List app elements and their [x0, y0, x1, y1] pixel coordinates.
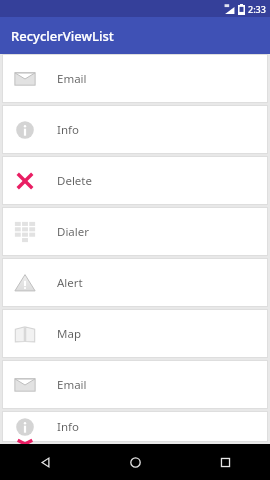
staticText: Delete — [57, 173, 92, 189]
staticText: Email — [57, 377, 87, 393]
button[interactable]: Info — [2, 411, 268, 442]
button[interactable]: Delete — [2, 156, 268, 205]
button[interactable]: Home — [90, 444, 180, 480]
staticText: 2:33 — [248, 3, 266, 15]
staticText: Dialer — [57, 224, 90, 240]
staticText: Email — [57, 71, 87, 87]
staticText: Map — [57, 326, 81, 342]
button[interactable]: Email — [2, 54, 268, 103]
button[interactable]: Alert — [2, 258, 268, 307]
button[interactable]: Dialer — [2, 207, 268, 256]
staticText: Info — [57, 122, 79, 138]
button[interactable]: Info — [2, 105, 268, 154]
staticText: Alert — [57, 275, 83, 291]
button[interactable]: Map — [2, 309, 268, 358]
button[interactable]: Email — [2, 360, 268, 409]
staticText: Info — [57, 419, 79, 435]
staticText: RecyclerViewList — [11, 27, 114, 45]
button[interactable]: Recents — [180, 444, 270, 480]
button[interactable]: Back — [0, 444, 90, 480]
